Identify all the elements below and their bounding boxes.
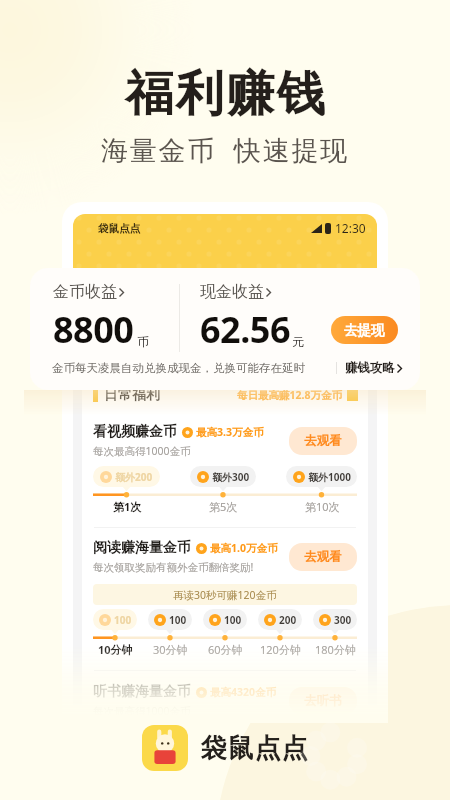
staticText: 日常福利 bbox=[104, 386, 160, 404]
staticText: 额外300 bbox=[212, 470, 250, 484]
staticText: 听书赚海量金币 bbox=[93, 683, 191, 701]
staticText: 币 bbox=[137, 334, 149, 349]
staticText: 金币每天凌晨自动兑换成现金，兑换可能存在延时 bbox=[52, 361, 305, 375]
staticText: 第1次 bbox=[113, 499, 142, 514]
staticText: 元 bbox=[292, 334, 304, 349]
staticText: 阅读赚海量金币 bbox=[93, 539, 191, 557]
staticText: 最高3.3万金币 bbox=[196, 425, 264, 439]
button[interactable]: 金币收益 bbox=[53, 282, 124, 302]
staticText: 62.56 bbox=[200, 305, 290, 354]
staticText: 每次最高得1000金币 bbox=[93, 444, 191, 458]
staticText: 金币收益 bbox=[53, 282, 117, 302]
staticText: 200 bbox=[279, 613, 297, 627]
staticText: 最高1.0万金币 bbox=[210, 541, 278, 555]
staticText: 去观看 bbox=[304, 549, 342, 565]
staticText: 每次领取奖励有额外金币翻倍奖励! bbox=[93, 560, 254, 574]
staticText: 100 bbox=[114, 613, 132, 627]
staticText: 额外200 bbox=[115, 470, 153, 484]
staticText: 180分钟 bbox=[315, 642, 356, 657]
staticText: 100 bbox=[224, 613, 242, 627]
button[interactable]: 去观看 bbox=[289, 543, 357, 571]
staticText: 福利赚钱 bbox=[124, 64, 326, 124]
staticText: 最高4320金币 bbox=[210, 685, 277, 699]
staticText: 30分钟 bbox=[153, 642, 188, 657]
button[interactable]: 去听书 bbox=[289, 687, 357, 715]
button[interactable]: 现金收益 bbox=[200, 282, 271, 302]
button[interactable]: 赚钱攻略 bbox=[345, 360, 402, 376]
button[interactable]: 去提现 bbox=[331, 316, 398, 344]
staticText: 袋鼠点点 bbox=[98, 222, 140, 235]
staticText: 120分钟 bbox=[260, 642, 301, 657]
staticText: 第5次 bbox=[209, 499, 238, 514]
staticText: 8800 bbox=[53, 305, 134, 354]
staticText: 赚钱攻略 bbox=[345, 360, 395, 376]
staticText: 60分钟 bbox=[208, 642, 243, 657]
staticText: 额外1000 bbox=[308, 470, 351, 484]
staticText: 第10次 bbox=[305, 499, 340, 514]
staticText: 100 bbox=[169, 613, 187, 627]
button[interactable]: 去观看 bbox=[289, 427, 357, 455]
staticText: 袋鼠点点 bbox=[200, 732, 308, 765]
staticText: 海量金币 快速提现 bbox=[101, 131, 350, 168]
staticText: 300 bbox=[334, 613, 352, 627]
staticText: 去提现 bbox=[344, 322, 385, 339]
staticText: 去观看 bbox=[304, 433, 342, 449]
staticText: 看视频赚金币 bbox=[93, 423, 177, 441]
staticText: 去听书 bbox=[304, 693, 342, 709]
staticText: 再读30秒可赚120金币 bbox=[173, 588, 277, 602]
staticText: 10分钟 bbox=[98, 642, 133, 657]
staticText: 12:30 bbox=[335, 220, 366, 236]
staticText: 现金收益 bbox=[200, 282, 264, 302]
staticText: 每日最高赚12.8万金币 bbox=[237, 388, 342, 402]
